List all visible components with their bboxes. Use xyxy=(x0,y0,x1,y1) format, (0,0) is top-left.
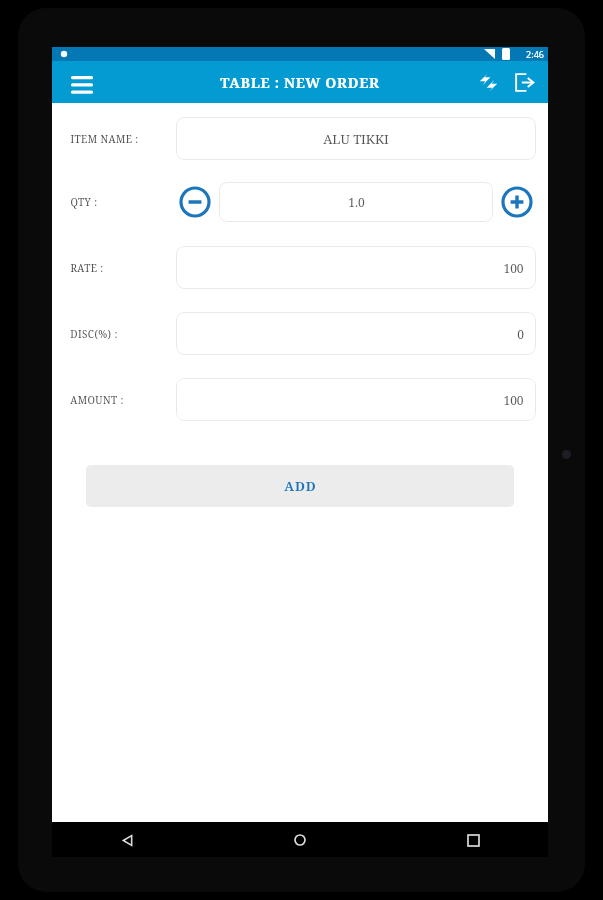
staticText: DISC(%) : xyxy=(70,327,118,341)
staticText: 100 xyxy=(503,392,524,408)
staticText: 1.0 xyxy=(348,194,365,210)
staticText: RATE : xyxy=(70,261,104,275)
button[interactable]: 100 xyxy=(176,378,536,421)
button[interactable]: Home xyxy=(283,823,317,857)
button[interactable]: ALU TIKKI xyxy=(176,117,536,160)
button[interactable]: Recent apps xyxy=(456,823,490,857)
button[interactable]: ADD xyxy=(86,465,514,507)
button[interactable]: Back xyxy=(110,823,144,857)
staticText: 100 xyxy=(503,260,524,276)
staticText: ADD xyxy=(284,477,317,495)
staticText: 2:46 xyxy=(526,48,544,60)
staticText: ITEM NAME : xyxy=(70,132,139,146)
staticText: TABLE : NEW ORDER xyxy=(220,73,380,92)
button[interactable]: Decrease quantity xyxy=(176,183,214,221)
staticText: AMOUNT : xyxy=(70,393,124,407)
button[interactable]: Logout xyxy=(506,64,542,100)
button[interactable]: 100 xyxy=(176,246,536,289)
button[interactable]: Increase quantity xyxy=(498,183,536,221)
staticText: ALU TIKKI xyxy=(323,130,389,148)
staticText: 0 xyxy=(517,326,524,342)
button[interactable]: Open navigation menu xyxy=(64,64,100,100)
button[interactable]: 0 xyxy=(176,312,536,355)
button[interactable]: 1.0 xyxy=(219,182,493,222)
staticText: QTY : xyxy=(70,195,98,209)
button[interactable]: Sync xyxy=(470,64,506,100)
